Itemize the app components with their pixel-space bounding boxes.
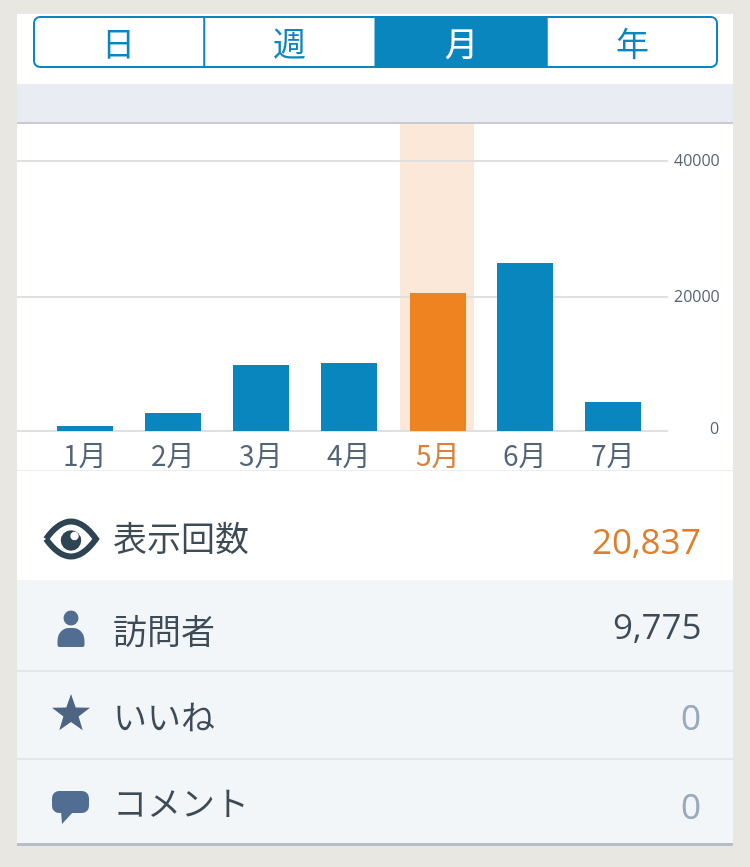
staticText: 3月: [239, 434, 283, 468]
staticText: 日: [102, 18, 135, 66]
button[interactable]: 表示回数: [17, 471, 733, 580]
staticText: 40000: [674, 149, 720, 171]
staticText: 訪問者: [113, 605, 215, 654]
staticText: 9,775: [613, 602, 702, 650]
button[interactable]: 週: [204, 16, 375, 68]
button[interactable]: 訪問者: [17, 580, 733, 670]
button[interactable]: いいね: [17, 672, 733, 758]
staticText: 0: [681, 693, 702, 741]
staticText: 2月: [151, 434, 195, 468]
staticText: 4月: [327, 434, 371, 468]
staticText: 7月: [591, 434, 635, 468]
staticText: 週: [273, 18, 306, 66]
button[interactable]: コメント: [17, 760, 733, 843]
staticText: 表示回数: [113, 512, 249, 561]
staticText: 0: [710, 417, 720, 439]
staticText: 月: [445, 18, 478, 66]
button[interactable]: 年: [547, 16, 718, 68]
button[interactable]: 月: [376, 16, 547, 68]
staticText: いいね: [113, 691, 215, 740]
button[interactable]: 日: [33, 16, 204, 68]
staticText: 20,837: [592, 517, 701, 565]
staticText: 0: [681, 782, 702, 830]
staticText: 1月: [63, 434, 107, 468]
staticText: 年: [616, 18, 649, 66]
staticText: 20000: [674, 285, 720, 307]
staticText: コメント: [113, 777, 249, 826]
staticText: 5月: [416, 434, 460, 468]
staticText: 6月: [503, 434, 547, 468]
